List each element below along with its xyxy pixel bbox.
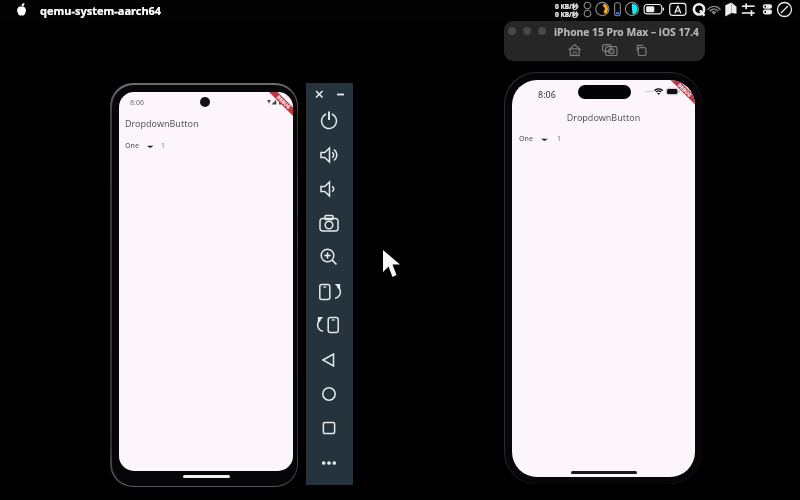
staticText: DropdownButton [125,117,199,129]
staticText: 8:06 [130,98,144,108]
button[interactable]: Recents [316,415,342,441]
staticText: DEBUG [276,94,292,110]
button[interactable]: Window control [508,27,516,35]
button[interactable]: Screenshot [602,42,619,59]
button[interactable]: Rotate left [316,279,342,305]
staticText: DropdownButton [512,111,695,123]
staticText: iPhone 15 Pro Max – iOS 17.4 [554,25,699,39]
button[interactable]: qemu-system-aarch64 [40,3,162,18]
button[interactable]: Volume down [316,176,342,202]
button[interactable]: Minimize emulator [332,86,350,104]
button[interactable]: Window control [538,27,546,35]
button[interactable]: Screenshot [316,211,342,237]
button[interactable]: Home [566,42,583,59]
staticText: 0 KB/秒 0 KB/秒 [555,2,579,19]
staticText: DEBUG [677,82,693,98]
staticText: One [125,141,139,151]
staticText: 1 [557,134,562,144]
button[interactable]: Window control [523,27,531,35]
button[interactable]: Close emulator [311,86,329,104]
button[interactable]: One [125,141,166,151]
button[interactable]: Back [316,347,342,373]
staticText: One [519,134,533,144]
button[interactable]: Volume up [316,142,342,168]
button[interactable]: 8:06 [119,92,293,471]
button[interactable]: Power [316,108,342,134]
button[interactable]: More options [316,450,342,476]
button[interactable]: Rotate [634,42,651,59]
staticText: 1 [161,141,166,151]
staticText: 8:06 [538,88,556,100]
button[interactable]: One [519,134,562,144]
button[interactable]: Home [316,381,342,407]
button[interactable]: 8:06 [512,80,695,477]
button[interactable]: Zoom in [316,244,342,270]
button[interactable]: Rotate right [316,312,342,338]
